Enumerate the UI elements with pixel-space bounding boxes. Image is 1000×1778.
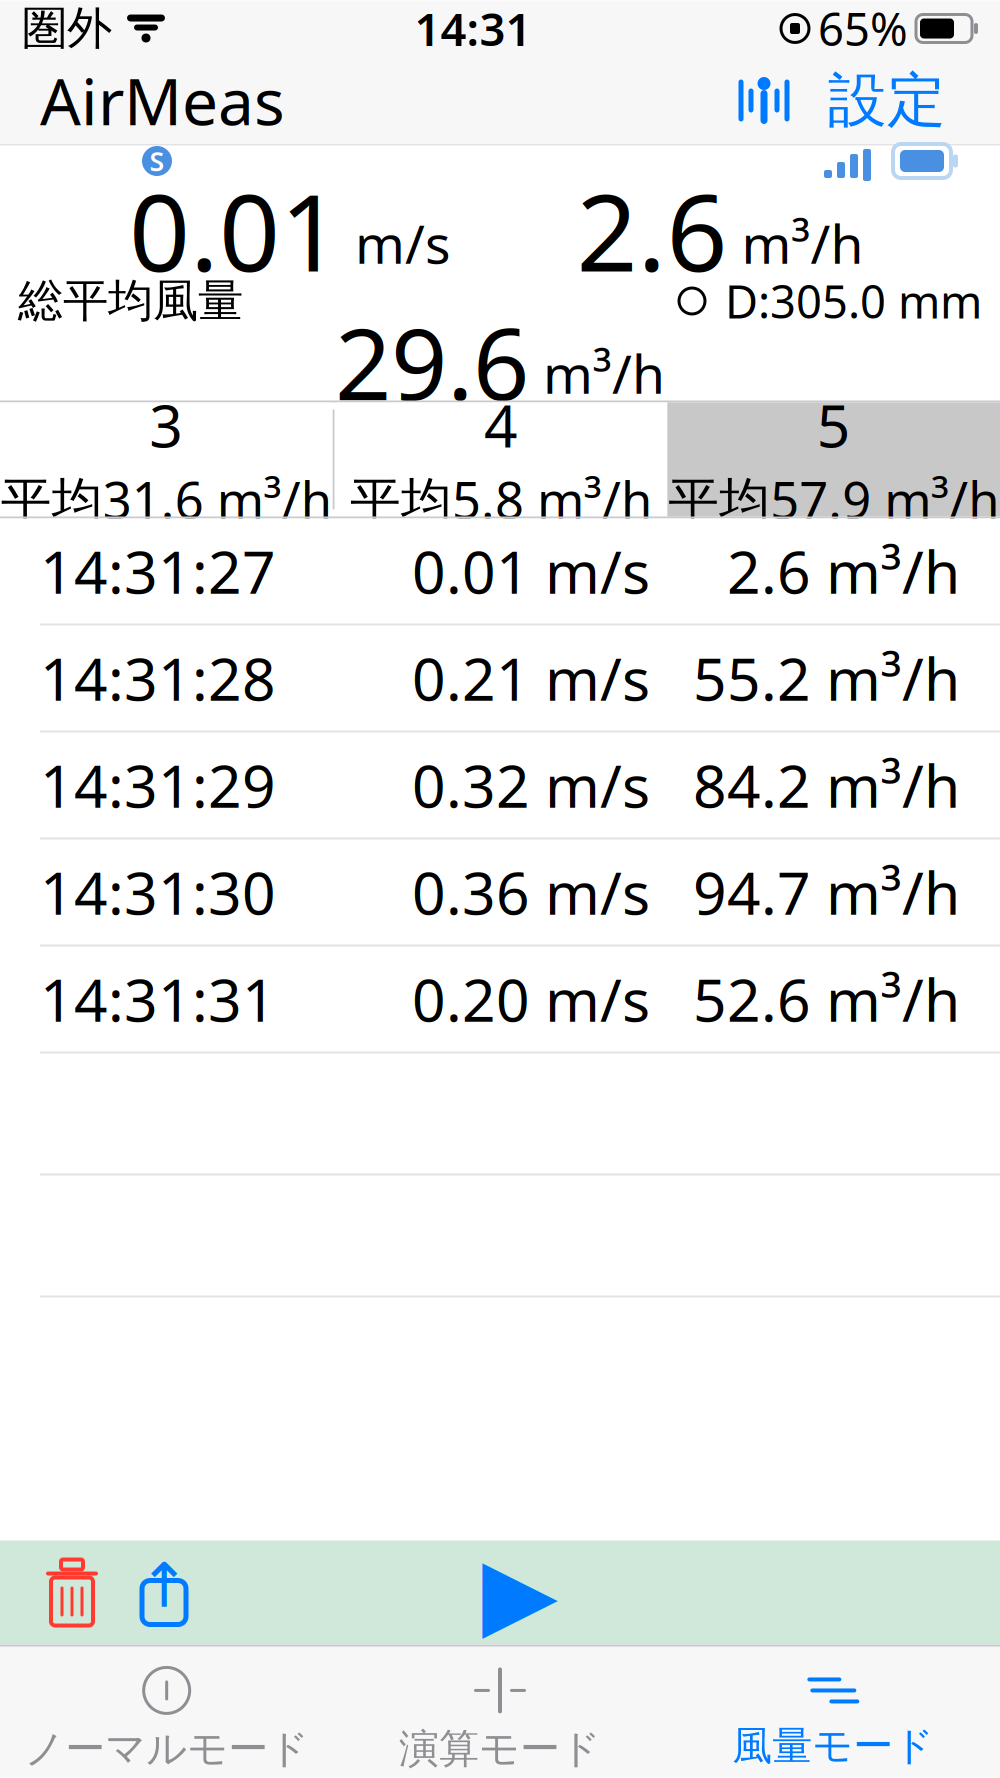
staticText: 94.7 m³/h — [693, 853, 960, 931]
staticText: 5 — [817, 386, 851, 464]
button[interactable]: Connect sensor — [714, 64, 814, 136]
staticText: 4 — [484, 386, 518, 464]
button[interactable]: 風量モード — [667, 1646, 1000, 1777]
staticText: 14:31:31 — [40, 960, 276, 1038]
staticText: m/s — [355, 208, 451, 278]
staticText: m³/h — [543, 338, 665, 408]
staticText: 0.20 m/s — [412, 960, 650, 1038]
staticText: 2.6 m³/h — [727, 532, 960, 610]
staticText: D:305.0 mm — [725, 271, 982, 331]
staticText: 0.32 m/s — [412, 746, 650, 824]
button[interactable]: 演算モード — [333, 1646, 667, 1777]
staticText: 55.2 m³/h — [693, 639, 960, 717]
staticText: 平均57.9 m³/h — [668, 466, 999, 533]
staticText: 0.01 — [129, 159, 341, 301]
button[interactable]: 設定 — [814, 56, 960, 145]
button[interactable]: 3 — [0, 402, 333, 516]
staticText: 52.6 m³/h — [693, 960, 960, 1038]
staticText: 84.2 m³/h — [693, 746, 960, 824]
staticText: 演算モード — [399, 1724, 601, 1773]
staticText: ↑ — [138, 1551, 189, 1620]
staticText: 0.36 m/s — [412, 853, 650, 931]
staticText: 平均31.6 m³/h — [1, 466, 332, 533]
staticText: 風量モード — [732, 1721, 934, 1770]
button[interactable]: 4 — [335, 402, 667, 516]
staticText: 0.01 m/s — [412, 532, 650, 610]
staticText: 0.21 m/s — [412, 639, 650, 717]
button[interactable]: Share — [118, 1545, 210, 1639]
staticText: 14:31:28 — [40, 639, 276, 717]
staticText: 14:31:30 — [40, 853, 276, 931]
staticText: m³/h — [741, 208, 863, 278]
staticText: 3 — [149, 386, 183, 464]
staticText: 14:31:27 — [40, 532, 276, 610]
staticText: 圏外 — [22, 1, 112, 56]
button[interactable]: Delete — [26, 1545, 118, 1639]
staticText: 2.6 — [576, 159, 727, 301]
staticText: S — [149, 143, 164, 179]
button[interactable]: ノーマルモード — [0, 1646, 333, 1777]
staticText: ノーマルモード — [24, 1724, 309, 1773]
staticText: 14:31 — [414, 0, 531, 59]
staticText: 平均5.8 m³/h — [350, 466, 652, 533]
staticText: ▶ — [482, 1536, 558, 1648]
staticText: 総平均風量 — [18, 273, 243, 329]
staticText: AirMeas — [40, 58, 285, 143]
staticText: 設定 — [828, 64, 946, 137]
staticText: 65% — [818, 0, 908, 59]
button[interactable]: 5 — [667, 402, 1000, 516]
staticText: 29.6 — [335, 296, 529, 427]
staticText: 14:31:29 — [40, 746, 276, 824]
button[interactable]: Start measuring — [455, 1542, 585, 1642]
